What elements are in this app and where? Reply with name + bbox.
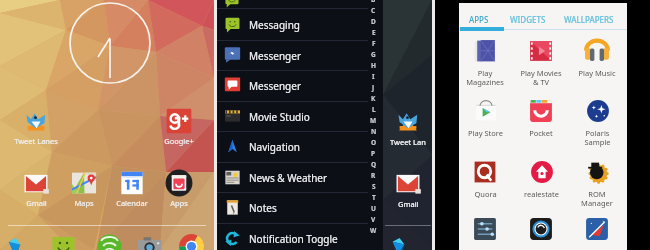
staticText: APPS — [469, 14, 489, 25]
button[interactable]: Dock app — [178, 233, 205, 250]
button[interactable]: App — [514, 216, 568, 246]
button[interactable]: Notification Toggle — [217, 223, 383, 250]
staticText: Messenger — [249, 49, 302, 63]
button[interactable]: Messenger — [217, 70, 383, 101]
button[interactable]: Messaging — [217, 9, 383, 40]
staticText: S — [372, 182, 376, 191]
button[interactable]: Apps — [150, 169, 208, 213]
staticText: C — [371, 6, 376, 15]
button[interactable]: APPS — [451, 9, 507, 29]
staticText: realestate — [524, 189, 559, 199]
button[interactable]: Google+ — [150, 107, 208, 151]
staticText: Notification Toggle — [249, 232, 338, 246]
button[interactable]: Play Store — [458, 96, 512, 152]
staticText: Quora — [474, 189, 497, 199]
staticText: L — [372, 105, 376, 114]
staticText: V — [371, 215, 376, 224]
staticText: Messenger — [249, 79, 302, 93]
button[interactable]: Gmail — [7, 169, 65, 213]
staticText: ROM Manager — [581, 189, 613, 208]
staticText: Play Store — [468, 128, 503, 138]
button[interactable]: Calendar — [103, 169, 161, 213]
staticText: News & Weather — [249, 171, 328, 185]
button[interactable]: Dock app — [1, 232, 28, 250]
staticText: W — [370, 226, 377, 234]
staticText: Navigation — [249, 140, 301, 154]
staticText: E — [372, 28, 376, 37]
button[interactable]: Notes — [217, 192, 383, 223]
button[interactable]: Messenger — [217, 40, 383, 71]
staticText: Play Magazines — [466, 68, 504, 87]
button[interactable]: News & Weather — [217, 162, 383, 193]
button[interactable]: Play Movies & TV — [514, 36, 568, 92]
button[interactable]: realestate — [514, 157, 568, 213]
staticText: H — [371, 61, 376, 70]
staticText: R — [371, 171, 376, 180]
staticText: Movie Studio — [249, 110, 310, 124]
staticText: WALLPAPERS — [564, 14, 614, 25]
staticText: N — [371, 127, 377, 136]
staticText: WIDGETS — [510, 14, 546, 25]
button[interactable]: Tweet Lanes — [7, 107, 65, 151]
button[interactable]: Movie Studio — [217, 101, 383, 132]
button[interactable]: Dock app — [136, 234, 163, 250]
button[interactable]: Drive — [385, 232, 412, 250]
staticText: Tweet Lan — [390, 137, 426, 147]
staticText: K — [371, 94, 376, 103]
button[interactable]: Maps — [55, 169, 113, 213]
button[interactable]: Quora — [458, 157, 512, 213]
button[interactable]: Pocket — [514, 96, 568, 152]
button[interactable]: Dock app — [96, 233, 123, 250]
staticText: I — [372, 72, 375, 81]
staticText: Calendar — [116, 198, 148, 208]
staticText: G — [371, 50, 376, 59]
staticText: J — [372, 83, 375, 92]
staticText: Gmail — [26, 198, 47, 208]
button[interactable]: Tweet Lan — [387, 107, 429, 147]
staticText: M — [370, 116, 377, 125]
staticText: Google+ — [164, 136, 194, 146]
staticText: Apps — [170, 198, 188, 208]
button[interactable]: Polaris Sample — [570, 96, 624, 152]
staticText: Maps — [74, 198, 94, 208]
staticText: Play Movies & TV — [520, 68, 562, 87]
button[interactable]: App — [458, 216, 512, 246]
staticText: T — [372, 193, 376, 202]
button[interactable]: Play Magazines — [458, 36, 512, 92]
button[interactable]: Gmail — [387, 169, 429, 209]
staticText: Pocket — [529, 128, 553, 138]
button[interactable]: Play Music — [570, 36, 624, 92]
staticText: Notes — [249, 201, 277, 215]
button[interactable]: WALLPAPERS — [561, 9, 617, 29]
staticText: D — [371, 17, 376, 26]
staticText: Tweet Lanes — [14, 136, 58, 146]
button[interactable]: Dock app — [50, 234, 77, 250]
staticText: Play Music — [578, 68, 616, 78]
staticText: U — [371, 204, 376, 213]
staticText: P — [371, 149, 376, 158]
staticText: Q — [371, 160, 377, 169]
staticText: B — [371, 0, 376, 4]
button[interactable]: Navigation — [217, 131, 383, 162]
staticText: Messaging — [249, 18, 300, 32]
button[interactable]: Alphabet index — [364, 0, 383, 234]
button[interactable]: WIDGETS — [500, 9, 556, 29]
button[interactable]: ROM Manager — [570, 157, 624, 213]
staticText: F — [372, 39, 376, 48]
staticText: O — [371, 138, 377, 147]
staticText: Polaris Sample — [584, 128, 611, 147]
staticText: Gmail — [398, 199, 419, 209]
button[interactable]: App — [570, 216, 624, 246]
